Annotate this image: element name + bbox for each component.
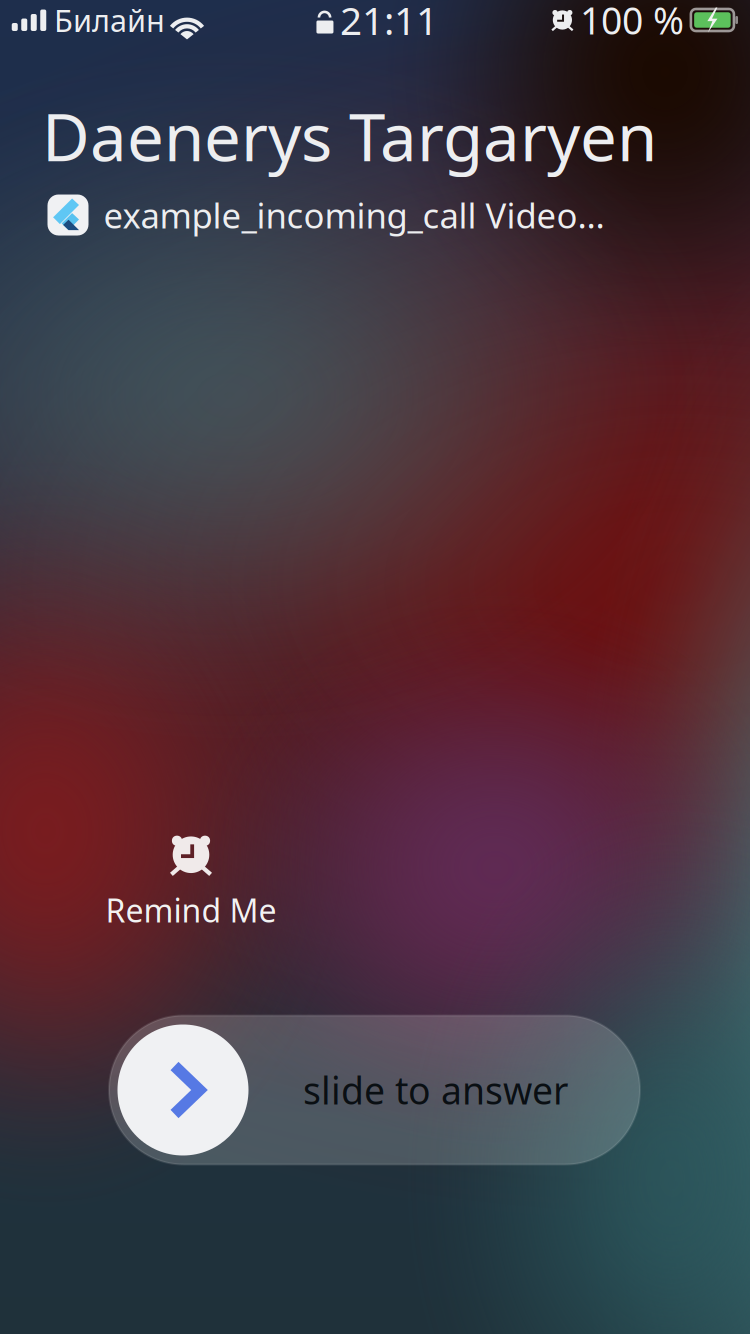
staticText: Билайн — [54, 0, 165, 40]
staticText: 21:11 — [340, 0, 438, 46]
button[interactable]: Remind Me — [105, 835, 276, 931]
staticText: example_incoming_call Video... — [103, 192, 604, 238]
button[interactable]: slide to answer — [109, 1015, 640, 1164]
staticText: Daenerys Targaryen — [42, 93, 657, 179]
staticText: 100 % — [580, 0, 684, 45]
staticText: Remind Me — [105, 889, 276, 931]
staticText: slide to answer — [303, 1065, 568, 1115]
